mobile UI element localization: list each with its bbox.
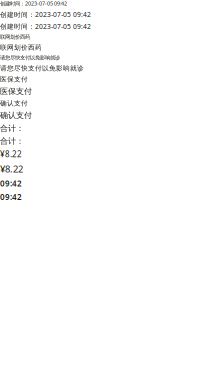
staticText: 创建时间：2023-07-05 09:42 xyxy=(0,10,91,19)
staticText: 创建时间：2023-07-05 09:42 xyxy=(0,0,67,7)
staticText: 联网划价西药 xyxy=(0,34,30,40)
staticText: 合计： xyxy=(0,136,24,146)
staticText: ¥8.22 xyxy=(0,149,22,160)
staticText: 请您尽快支付以免影响就诊 xyxy=(0,54,60,61)
staticText: 联网划价西药 xyxy=(0,43,42,51)
staticText: ¥8.22 xyxy=(0,163,23,175)
staticText: 创建时间：2023-07-05 09:42 xyxy=(0,22,91,31)
staticText: 确认支付 xyxy=(0,110,32,120)
staticText: 合计： xyxy=(0,123,24,133)
staticText: 09:42 xyxy=(0,178,22,189)
staticText: 请您尽快支付以免影响就诊 xyxy=(0,64,84,72)
staticText: 医保支付 xyxy=(0,75,28,83)
staticText: 医保支付 xyxy=(0,86,32,96)
staticText: 确认支付 xyxy=(0,99,28,107)
staticText: 09:42 xyxy=(0,192,22,202)
